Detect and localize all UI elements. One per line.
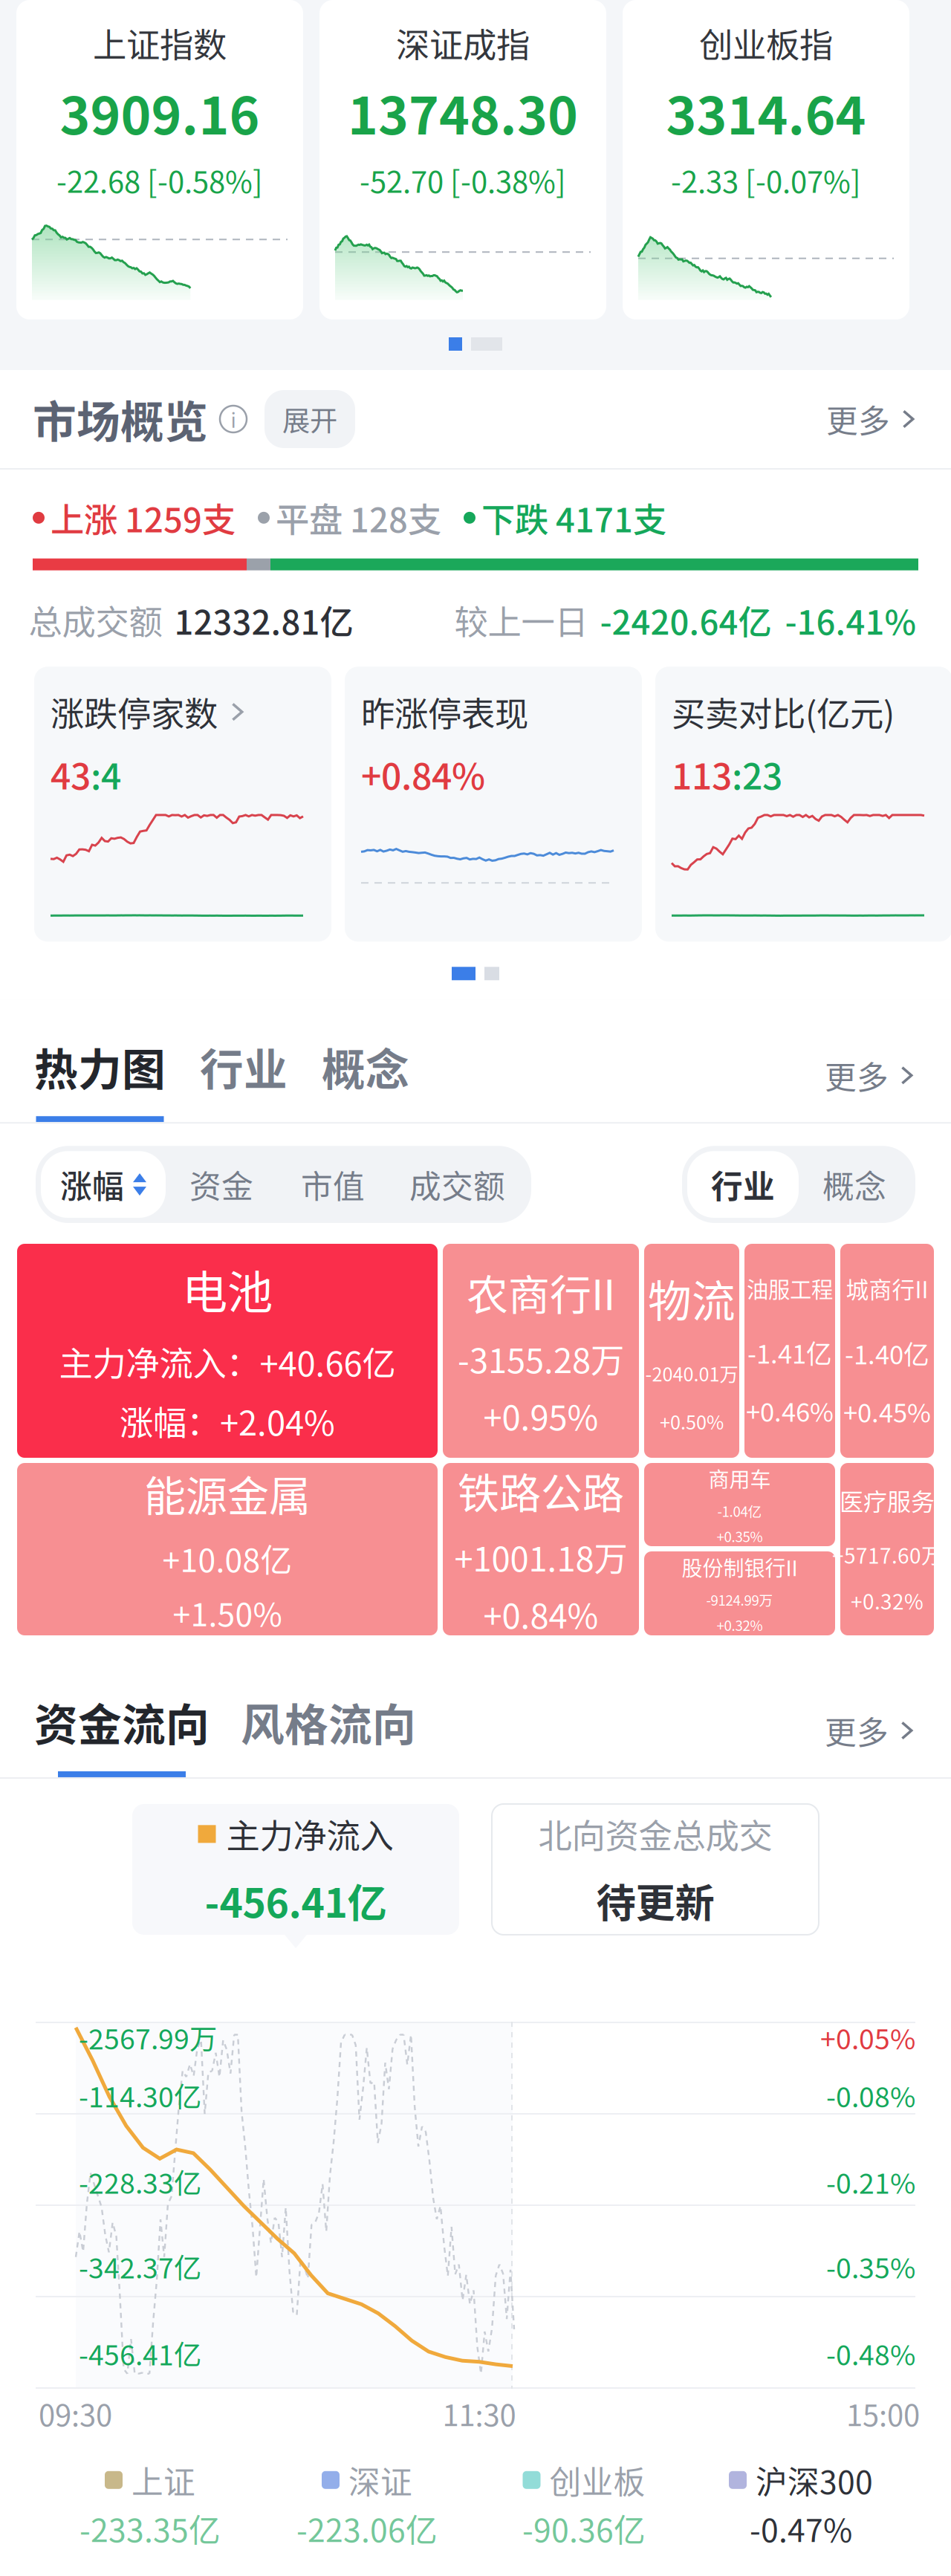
staticText: +0.05% xyxy=(820,2017,915,2057)
button[interactable]: 农商行II xyxy=(443,1244,639,1458)
button[interactable]: 行业 xyxy=(200,1035,288,1098)
button[interactable]: 深证成指 xyxy=(319,0,606,319)
staticText: 概念 xyxy=(822,1161,886,1207)
staticText: -3155.28万 xyxy=(458,1334,624,1383)
staticText: 概念 xyxy=(322,1035,409,1098)
staticText: 待更新 xyxy=(596,1872,714,1929)
staticText: 下跌 4171支 xyxy=(481,493,666,542)
staticText: 能源金属 xyxy=(144,1463,311,1523)
staticText: -0.35% xyxy=(826,2246,915,2286)
staticText: 3909.16 xyxy=(60,75,260,149)
staticText: 15:00 xyxy=(846,2392,920,2435)
button[interactable]: 更多 xyxy=(826,396,918,442)
button[interactable]: 城商行II xyxy=(840,1244,934,1458)
staticText: 热力图 xyxy=(34,1035,166,1098)
staticText: 商用车 xyxy=(708,1463,771,1493)
staticText: 成交额 xyxy=(409,1161,505,1207)
staticText: 铁路公路 xyxy=(458,1460,624,1520)
staticText: 风格流向 xyxy=(241,1690,416,1753)
staticText: +0.95% xyxy=(483,1391,598,1440)
staticText: +10.08亿 xyxy=(162,1535,292,1581)
staticText: 行业 xyxy=(711,1161,775,1207)
button[interactable]: 油服工程 xyxy=(744,1244,835,1458)
staticText: -2420.64亿 xyxy=(600,596,772,644)
staticText: +0.46% xyxy=(746,1392,834,1429)
staticText: -456.41亿 xyxy=(79,2333,201,2373)
staticText: :4 xyxy=(91,748,121,800)
button[interactable]: 概念 xyxy=(322,1035,409,1098)
button[interactable]: 物流 xyxy=(644,1244,739,1458)
staticText: i xyxy=(231,405,236,433)
staticText: -52.70 [-0.38%] xyxy=(360,158,566,201)
staticText: 创业板指 xyxy=(699,19,833,67)
staticText: -2567.99万 xyxy=(79,2017,217,2057)
button[interactable]: 电池 xyxy=(17,1244,438,1458)
staticText: 11:30 xyxy=(442,2392,516,2435)
button[interactable]: 市值 xyxy=(277,1161,389,1207)
staticText: 行业 xyxy=(200,1035,288,1098)
staticText: 涨幅：+2.04% xyxy=(120,1396,335,1445)
staticText: 更多 xyxy=(825,1052,889,1098)
button[interactable]: 创业板指 xyxy=(623,0,909,319)
staticText: 股份制银行II xyxy=(682,1552,798,1582)
staticText: +0.84% xyxy=(361,748,485,800)
button[interactable]: 能源金属 xyxy=(17,1463,438,1635)
button[interactable]: 商用车 xyxy=(644,1463,835,1546)
staticText: 买卖对比(亿元) xyxy=(672,688,895,736)
staticText: +0.32% xyxy=(851,1585,924,1615)
button[interactable]: 昨涨停表现 xyxy=(345,667,642,942)
staticText: 电池 xyxy=(182,1256,273,1322)
staticText: 市场概览 xyxy=(33,387,208,451)
staticText: +0.84% xyxy=(483,1589,598,1638)
button[interactable]: 更多 xyxy=(825,1708,917,1753)
button[interactable]: 买卖对比(亿元) xyxy=(655,667,951,942)
button[interactable]: 上证指数 xyxy=(16,0,303,319)
staticText: 上涨 1259支 xyxy=(51,493,236,542)
staticText: 主力净流入：+40.66亿 xyxy=(59,1337,396,1386)
button[interactable]: 涨跌停家数 xyxy=(34,667,331,942)
staticText: 创业板 xyxy=(549,2457,645,2503)
button[interactable]: 北向资金总成交 xyxy=(492,1804,819,1935)
staticText: 北向资金总成交 xyxy=(538,1810,772,1858)
staticText: -90.36亿 xyxy=(522,2505,646,2551)
staticText: -1.40亿 xyxy=(845,1334,929,1372)
staticText: -2.33 [-0.07%] xyxy=(671,158,861,201)
staticText: 展开 xyxy=(282,399,337,439)
staticText: -456.41亿 xyxy=(205,1872,387,1929)
staticText: 43 xyxy=(51,748,91,800)
button[interactable]: 主力净流入 xyxy=(132,1804,459,1935)
staticText: -0.47% xyxy=(750,2505,852,2551)
button[interactable]: 医疗服务 xyxy=(840,1463,934,1635)
button[interactable]: 风格流向 xyxy=(241,1690,416,1753)
staticText: 沪深300 xyxy=(756,2457,873,2503)
button[interactable]: 展开 xyxy=(264,390,355,448)
button[interactable]: 成交额 xyxy=(389,1161,526,1207)
staticText: 较上一日 xyxy=(454,596,588,644)
button[interactable]: 更多 xyxy=(825,1052,917,1098)
staticText: -2040.01万 xyxy=(645,1360,738,1387)
staticText: 深证 xyxy=(348,2457,412,2503)
staticText: 油服工程 xyxy=(747,1272,833,1304)
staticText: +0.32% xyxy=(717,1615,763,1635)
staticText: 物流 xyxy=(648,1267,736,1330)
button[interactable]: 概念 xyxy=(799,1151,910,1218)
staticText: +1001.18万 xyxy=(454,1532,627,1581)
staticText: -223.06亿 xyxy=(296,2505,438,2551)
staticText: 资金流向 xyxy=(34,1690,210,1753)
staticText: 农商行II xyxy=(467,1262,615,1322)
staticText: -228.33亿 xyxy=(79,2161,201,2202)
staticText: 深证成指 xyxy=(396,19,530,67)
button[interactable]: 资金 xyxy=(166,1161,277,1207)
staticText: -16.41% xyxy=(785,596,916,644)
staticText: 3314.64 xyxy=(666,75,866,149)
button[interactable]: 股份制银行II xyxy=(644,1551,835,1635)
staticText: 涨幅 xyxy=(60,1161,124,1207)
staticText: -0.21% xyxy=(826,2161,915,2202)
staticText: -233.35亿 xyxy=(79,2505,221,2551)
staticText: -1.41亿 xyxy=(747,1334,832,1371)
staticText: 上证指数 xyxy=(93,19,227,67)
button[interactable]: 铁路公路 xyxy=(443,1463,639,1635)
staticText: :23 xyxy=(732,748,782,800)
staticText: 上证 xyxy=(132,2457,195,2503)
staticText: 113 xyxy=(672,748,732,800)
